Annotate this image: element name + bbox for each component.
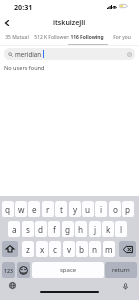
staticText: o: [113, 204, 118, 215]
staticText: j: [94, 224, 97, 235]
button[interactable]: Dictate: [120, 281, 131, 292]
staticText: v: [67, 244, 72, 255]
staticText: z: [26, 244, 30, 255]
staticText: l: [120, 224, 123, 235]
button[interactable]: Change keyboard: [7, 280, 18, 291]
staticText: x: [40, 244, 45, 255]
staticText: r: [46, 204, 50, 215]
button[interactable]: t: [55, 201, 67, 217]
staticText: m: [105, 244, 113, 255]
staticText: y: [73, 204, 78, 215]
button[interactable]: z: [22, 241, 34, 257]
staticText: s: [26, 224, 30, 235]
button[interactable]: p: [122, 201, 134, 217]
button[interactable]: i: [95, 201, 107, 217]
button[interactable]: j: [89, 221, 101, 237]
button[interactable]: meridian: [4, 48, 135, 60]
staticText: h: [78, 224, 84, 235]
staticText: c: [53, 244, 57, 255]
staticText: 512 K Followers: [34, 34, 69, 41]
staticText: b: [79, 244, 85, 255]
button[interactable]: r: [42, 201, 54, 217]
button[interactable]: s: [22, 221, 34, 237]
button[interactable]: 35 Mutual: [0, 30, 34, 44]
staticText: For you: [113, 34, 131, 41]
staticText: return: [112, 266, 130, 274]
button[interactable]: 512 K Followers: [34, 30, 69, 44]
button[interactable]: return: [105, 262, 137, 278]
button[interactable]: 123: [2, 262, 15, 278]
button[interactable]: q: [2, 201, 14, 217]
button[interactable]: e: [28, 201, 40, 217]
button[interactable]: Backspace: [119, 241, 136, 257]
button[interactable]: w: [15, 201, 27, 217]
button[interactable]: k: [102, 221, 114, 237]
button[interactable]: f: [48, 221, 60, 237]
staticText: q: [5, 204, 11, 215]
staticText: t: [60, 204, 63, 215]
staticText: meridian: [15, 50, 42, 58]
staticText: No users found: [4, 64, 45, 72]
staticText: p: [125, 204, 131, 215]
staticText: f: [53, 224, 56, 235]
button[interactable]: n: [89, 241, 101, 257]
button[interactable]: a: [8, 221, 20, 237]
staticText: g: [65, 224, 71, 235]
staticText: a: [12, 224, 17, 235]
button[interactable]: Back: [0, 16, 15, 30]
button[interactable]: 116 Following: [69, 30, 105, 44]
staticText: itskuizejli: [53, 18, 86, 28]
button[interactable]: h: [75, 221, 87, 237]
staticText: k: [106, 224, 111, 235]
button[interactable]: y: [69, 201, 81, 217]
staticText: 35 Mutual: [5, 34, 29, 41]
button[interactable]: m: [103, 241, 115, 257]
staticText: 123: [4, 267, 13, 274]
button[interactable]: d: [35, 221, 47, 237]
staticText: e: [32, 204, 37, 215]
button[interactable]: For you: [105, 30, 139, 44]
button[interactable]: x: [36, 241, 48, 257]
staticText: space: [60, 266, 77, 274]
button[interactable]: l: [115, 221, 127, 237]
button[interactable]: Shift: [2, 241, 18, 257]
staticText: u: [85, 204, 91, 215]
button[interactable]: o: [109, 201, 121, 217]
staticText: n: [92, 244, 98, 255]
button[interactable]: g: [62, 221, 74, 237]
button[interactable]: space: [32, 262, 104, 278]
button[interactable]: b: [76, 241, 88, 257]
button[interactable]: Emoji: [17, 262, 30, 278]
staticText: d: [38, 224, 44, 235]
button[interactable]: c: [49, 241, 61, 257]
staticText: w: [18, 204, 25, 215]
button[interactable]: u: [82, 201, 94, 217]
button[interactable]: v: [63, 241, 75, 257]
staticText: i: [100, 204, 103, 215]
staticText: 20:31: [14, 2, 33, 12]
staticText: 116 Following: [70, 34, 104, 41]
button[interactable]: Clear text: [127, 52, 132, 57]
